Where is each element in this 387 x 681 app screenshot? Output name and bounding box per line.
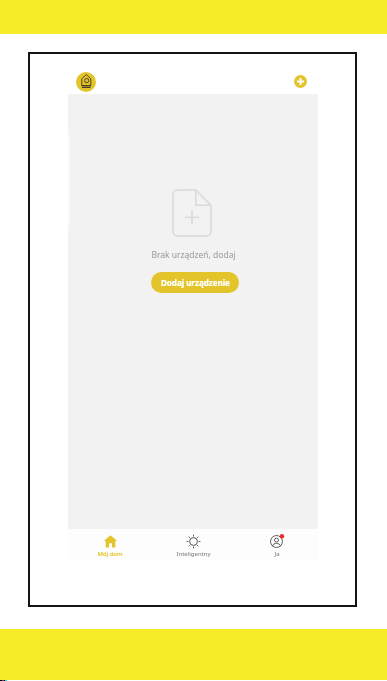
staticText: Brak urządzeń, dodaj <box>151 249 236 261</box>
button[interactable]: Add device <box>294 75 307 88</box>
staticText: Ja <box>274 550 280 558</box>
staticText: Inteligentny <box>176 550 211 558</box>
button[interactable]: Mój dom <box>68 529 152 560</box>
button[interactable]: Dodaj urządzenie <box>151 272 239 293</box>
staticText: Mój dom <box>97 550 123 558</box>
button[interactable]: Ja <box>235 529 318 560</box>
staticText: Dodaj urządzenie <box>161 277 230 288</box>
button[interactable]: Inteligentny <box>152 529 235 560</box>
button[interactable]: Home <box>76 72 96 92</box>
